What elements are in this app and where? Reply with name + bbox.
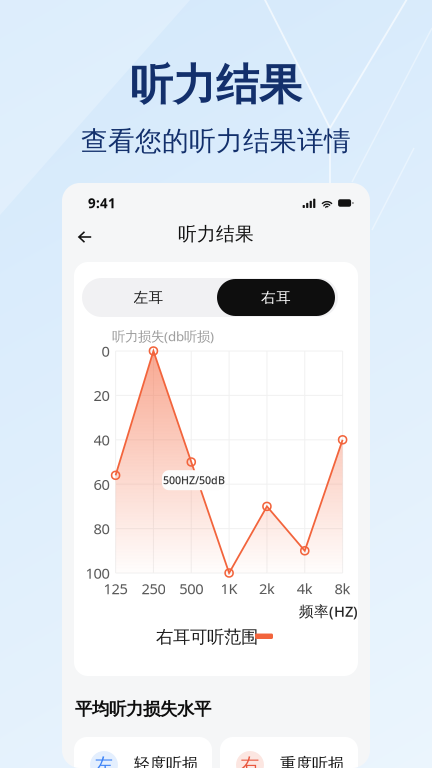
staticText: 60 bbox=[94, 474, 110, 494]
staticText: 0 bbox=[102, 341, 110, 361]
staticText: 500HZ/50dB bbox=[163, 473, 225, 487]
staticText: 40 bbox=[94, 430, 110, 450]
staticText: 轻度听损 bbox=[134, 754, 198, 768]
staticText: 500 bbox=[179, 578, 203, 598]
staticText: 1K bbox=[221, 578, 238, 598]
staticText: 250 bbox=[141, 578, 165, 598]
staticText: 听力结果 bbox=[178, 222, 254, 246]
staticText: 频率(HZ) bbox=[299, 601, 358, 621]
staticText: 2k bbox=[259, 578, 275, 598]
staticText: 重度听损 bbox=[280, 754, 344, 768]
staticText: 左 bbox=[94, 753, 113, 768]
staticText: 右耳 bbox=[261, 288, 291, 307]
button[interactable]: 返回 bbox=[72, 224, 98, 250]
staticText: 右 bbox=[240, 753, 259, 768]
staticText: 4k bbox=[297, 578, 313, 598]
staticText: 125 bbox=[104, 578, 128, 598]
staticText: 8k bbox=[335, 578, 351, 598]
staticText: 9:41 bbox=[88, 194, 116, 212]
staticText: 100 bbox=[86, 563, 110, 583]
staticText: 听力结果 bbox=[130, 58, 302, 112]
staticText: 80 bbox=[94, 519, 110, 539]
button[interactable]: 左耳 bbox=[82, 278, 215, 317]
staticText: 听力损失(db听损) bbox=[112, 327, 214, 345]
button[interactable]: 左 bbox=[74, 737, 212, 768]
button[interactable]: 右 bbox=[220, 737, 358, 768]
staticText: 左耳 bbox=[133, 288, 163, 307]
staticText: 查看您的听力结果详情 bbox=[81, 124, 351, 158]
staticText: 右耳可听范围 bbox=[156, 626, 258, 648]
staticText: 平均听力损失水平 bbox=[75, 698, 211, 720]
button[interactable]: 右耳 bbox=[217, 279, 335, 316]
staticText: 20 bbox=[94, 385, 110, 405]
